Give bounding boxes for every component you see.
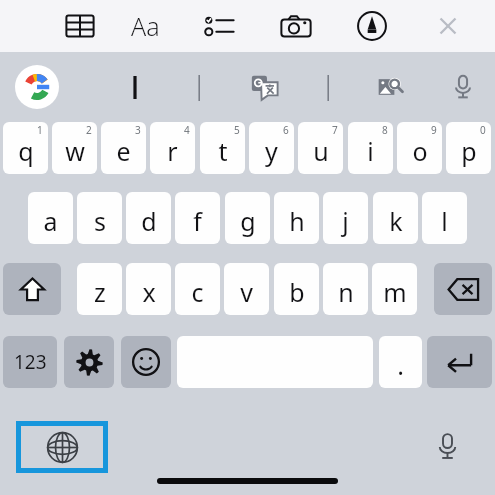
staticText: f	[193, 204, 202, 238]
button[interactable]: Checklist	[197, 0, 241, 52]
button[interactable]: e	[101, 122, 146, 174]
staticText: o	[412, 134, 428, 168]
staticText: s	[94, 204, 106, 238]
staticText: .	[397, 348, 404, 382]
button[interactable]: n	[323, 263, 368, 315]
staticText: b	[289, 275, 305, 309]
button[interactable]: l	[422, 192, 467, 244]
button[interactable]: a	[28, 192, 73, 244]
button[interactable]: Markup	[350, 0, 394, 52]
button[interactable]: Keyboard settings	[64, 336, 114, 388]
staticText: j	[342, 204, 349, 238]
button[interactable]: 123	[3, 336, 57, 388]
staticText: 7	[332, 123, 338, 137]
button[interactable]: o	[397, 122, 442, 174]
staticText: p	[461, 134, 477, 168]
button[interactable]: Google Lens image search	[371, 67, 411, 107]
staticText: i	[367, 134, 374, 168]
button[interactable]: t	[200, 122, 245, 174]
staticText: 9	[431, 123, 437, 137]
staticText: v	[240, 275, 253, 309]
button[interactable]: y	[249, 122, 294, 174]
staticText: 2	[86, 123, 92, 137]
button[interactable]: Close	[426, 0, 470, 52]
staticText: x	[142, 275, 156, 309]
staticText: 3	[135, 123, 141, 137]
staticText: w	[65, 134, 85, 168]
button[interactable]: v	[224, 263, 269, 315]
button[interactable]: i	[348, 122, 393, 174]
staticText: g	[240, 204, 256, 238]
staticText: 6	[283, 123, 289, 137]
staticText: 0	[480, 123, 486, 137]
staticText: u	[313, 134, 329, 168]
staticText: r	[167, 134, 178, 168]
button[interactable]: Aa	[120, 0, 170, 52]
staticText: n	[338, 275, 354, 309]
staticText: 123	[14, 349, 47, 375]
staticText: l	[441, 204, 448, 238]
button[interactable]: f	[175, 192, 220, 244]
button[interactable]: Insert table	[58, 0, 102, 52]
button[interactable]: Google	[15, 65, 59, 109]
staticText: q	[18, 134, 34, 168]
button[interactable]: q	[3, 122, 48, 174]
button[interactable]: r	[150, 122, 195, 174]
button[interactable]: Camera	[274, 0, 318, 52]
button[interactable]: g	[225, 192, 270, 244]
staticText: c	[191, 275, 204, 309]
staticText: 8	[382, 123, 388, 137]
staticText: m	[383, 275, 407, 309]
staticText: e	[116, 134, 131, 168]
button[interactable]: Return	[427, 336, 492, 388]
button[interactable]: .	[379, 336, 422, 388]
staticText: 5	[234, 123, 240, 137]
button[interactable]: Shift	[3, 263, 61, 315]
staticText: k	[389, 204, 403, 238]
button[interactable]: j	[323, 192, 368, 244]
button[interactable]: z	[77, 263, 122, 315]
button[interactable]: u	[298, 122, 343, 174]
staticText: z	[94, 275, 106, 309]
button[interactable]: p	[446, 122, 491, 174]
button[interactable]: Next keyboard language	[16, 421, 108, 473]
staticText: 4	[184, 123, 190, 137]
button[interactable]: d	[126, 192, 171, 244]
button[interactable]: x	[126, 263, 171, 315]
button[interactable]: Emoji	[121, 336, 171, 388]
button[interactable]: w	[52, 122, 97, 174]
button[interactable]: c	[175, 263, 220, 315]
button[interactable]: Translate	[245, 67, 285, 107]
button[interactable]: s	[77, 192, 122, 244]
button[interactable]: Voice search	[443, 67, 483, 107]
button[interactable]	[110, 65, 160, 109]
button[interactable]: m	[372, 263, 417, 315]
staticText: y	[265, 134, 278, 168]
button[interactable]: h	[274, 192, 319, 244]
button[interactable]: Dictate	[424, 423, 470, 469]
staticText: d	[141, 204, 157, 238]
staticText: t	[218, 134, 228, 168]
button[interactable]: k	[373, 192, 418, 244]
staticText: 1	[37, 123, 43, 137]
button[interactable]: b	[274, 263, 319, 315]
staticText: Aa	[131, 9, 160, 43]
button[interactable]: Backspace	[434, 263, 492, 315]
staticText: h	[289, 204, 305, 238]
staticText: a	[43, 204, 58, 238]
